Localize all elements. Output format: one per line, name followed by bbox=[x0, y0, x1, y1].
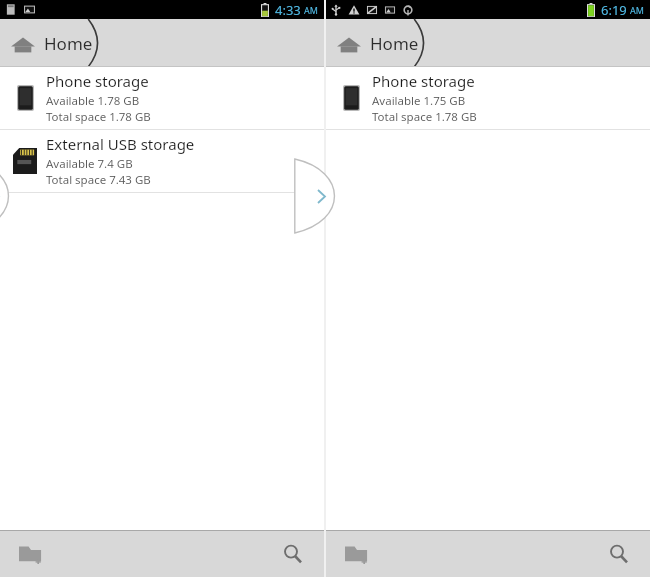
button[interactable]: Search bbox=[270, 531, 316, 577]
button[interactable]: Home bbox=[0, 19, 324, 67]
staticText: Available 1.75 GB bbox=[372, 93, 466, 109]
button[interactable]: Phone storage bbox=[326, 67, 650, 129]
staticText: 4:33 bbox=[275, 1, 301, 19]
button[interactable]: Home bbox=[326, 19, 650, 67]
staticText: AM bbox=[630, 4, 644, 16]
staticText: AM bbox=[304, 4, 318, 16]
button[interactable]: External USB storage bbox=[0, 130, 324, 192]
staticText: Home bbox=[44, 32, 93, 55]
button[interactable]: New folder bbox=[8, 531, 54, 577]
button[interactable]: Search bbox=[596, 531, 642, 577]
staticText: Total space 1.78 GB bbox=[372, 109, 477, 125]
staticText: Phone storage bbox=[372, 71, 475, 91]
button[interactable]: Phone storage bbox=[0, 67, 324, 129]
staticText: Available 1.78 GB bbox=[46, 93, 140, 109]
button[interactable]: New folder bbox=[334, 531, 380, 577]
staticText: Total space 1.78 GB bbox=[46, 109, 151, 125]
staticText: Phone storage bbox=[46, 71, 149, 91]
staticText: Home bbox=[370, 32, 419, 55]
staticText: Total space 7.43 GB bbox=[46, 172, 151, 188]
staticText: External USB storage bbox=[46, 134, 195, 154]
staticText: 6:19 bbox=[601, 1, 627, 19]
staticText: Available 7.4 GB bbox=[46, 156, 133, 172]
